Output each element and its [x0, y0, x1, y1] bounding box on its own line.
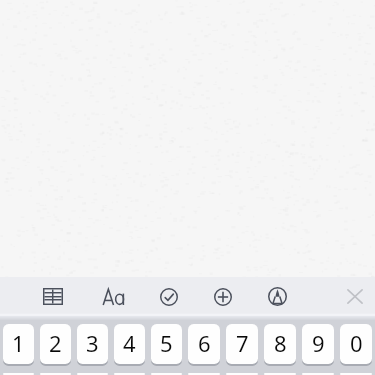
button[interactable]: 5 — [151, 324, 182, 364]
staticText: 0 — [350, 328, 363, 358]
button[interactable]: 3 — [77, 324, 108, 364]
button[interactable]: 2 — [40, 324, 71, 364]
button[interactable]: Text formatting — [97, 277, 131, 316]
button[interactable]: 0 — [340, 324, 372, 364]
staticText: 6 — [198, 328, 211, 358]
button[interactable]: 8 — [264, 324, 296, 364]
button[interactable]: Insert table — [36, 277, 70, 316]
staticText: 7 — [236, 328, 249, 358]
staticText: 5 — [160, 328, 173, 358]
button[interactable]: 4 — [114, 324, 145, 364]
staticText: 2 — [49, 328, 62, 358]
staticText: 3 — [86, 328, 99, 358]
staticText: 8 — [274, 328, 287, 358]
button[interactable]: 1 — [3, 324, 34, 364]
staticText: 4 — [123, 328, 136, 358]
button[interactable]: Add attachment — [206, 277, 240, 316]
button[interactable]: 6 — [188, 324, 220, 364]
staticText: 1 — [12, 328, 25, 358]
button[interactable]: Checklist — [152, 277, 186, 316]
button[interactable]: Markup — [260, 277, 294, 316]
button[interactable]: 9 — [302, 324, 334, 364]
staticText: 9 — [312, 328, 325, 358]
button[interactable]: 7 — [226, 324, 258, 364]
button[interactable]: Hide keyboard — [338, 277, 372, 316]
